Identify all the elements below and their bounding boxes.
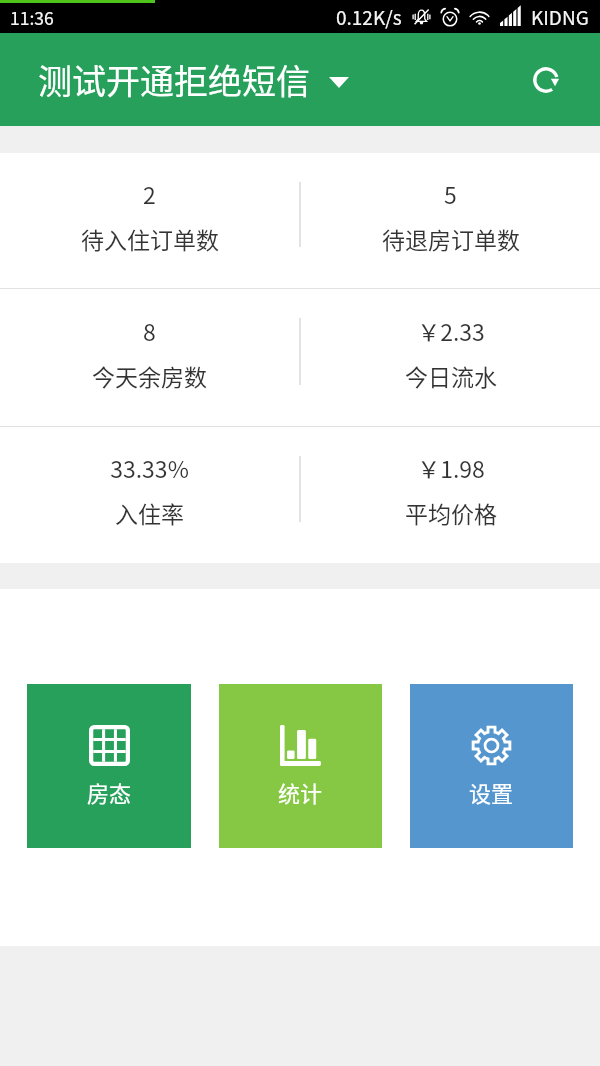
staticText: 5: [444, 177, 457, 210]
staticText: 今日流水: [405, 359, 497, 392]
staticText: 入住率: [115, 496, 184, 529]
staticText: 今天余房数: [92, 359, 207, 392]
staticText: 设置: [469, 776, 514, 808]
button[interactable]: Refresh: [523, 57, 569, 103]
button[interactable]: 统计: [219, 684, 382, 848]
staticText: 0.12K/s: [336, 3, 402, 31]
button[interactable]: 测试开通拒绝短信: [38, 55, 349, 104]
staticText: 8: [143, 314, 156, 347]
staticText: 待退房订单数: [382, 222, 520, 255]
button[interactable]: 8: [0, 289, 299, 426]
staticText: ￥2.33: [417, 314, 485, 347]
staticText: 测试开通拒绝短信: [38, 55, 310, 104]
staticText: 2: [143, 177, 156, 210]
staticText: 统计: [278, 776, 323, 808]
staticText: ￥1.98: [417, 451, 485, 484]
button[interactable]: ￥1.98: [301, 427, 600, 563]
button[interactable]: 设置: [410, 684, 573, 848]
staticText: KIDNG: [531, 3, 589, 31]
staticText: 平均价格: [405, 496, 497, 529]
staticText: 房态: [87, 776, 132, 808]
button[interactable]: 2: [0, 153, 299, 288]
staticText: 待入住订单数: [81, 222, 219, 255]
button[interactable]: 33.33%: [0, 427, 299, 563]
staticText: 33.33%: [110, 451, 189, 484]
button[interactable]: 5: [301, 153, 600, 288]
staticText: 11:36: [10, 5, 54, 30]
button[interactable]: ￥2.33: [301, 289, 600, 426]
button[interactable]: 房态: [27, 684, 191, 848]
